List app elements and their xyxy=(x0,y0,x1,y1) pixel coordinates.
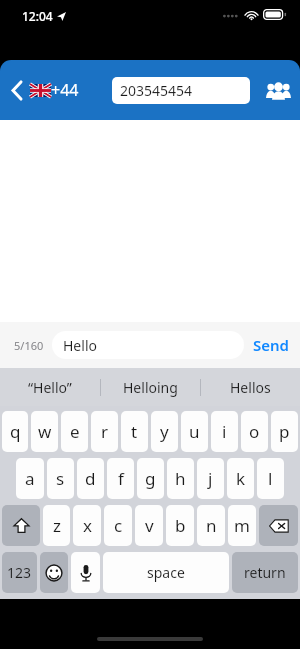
staticText: “Hello” xyxy=(28,378,72,397)
button[interactable]: Emoji xyxy=(40,552,68,593)
button[interactable]: c xyxy=(104,505,132,546)
button[interactable]: n xyxy=(197,505,225,546)
staticText: t xyxy=(131,420,138,443)
button[interactable]: o xyxy=(241,411,268,452)
staticText: v xyxy=(145,514,154,537)
staticText: x xyxy=(83,514,92,537)
button[interactable]: y xyxy=(151,411,178,452)
staticText: g xyxy=(145,467,156,490)
button[interactable]: f xyxy=(107,458,134,499)
button[interactable]: q xyxy=(2,411,28,452)
button[interactable]: return xyxy=(232,552,298,593)
button[interactable]: Helloing xyxy=(101,368,200,406)
button[interactable]: u xyxy=(181,411,208,452)
button[interactable]: space xyxy=(103,552,229,593)
staticText: return xyxy=(244,563,286,582)
staticText: Hellos xyxy=(230,378,271,397)
button[interactable]: “Hello” xyxy=(0,368,100,406)
button[interactable]: Shift xyxy=(2,505,40,546)
button[interactable]: d xyxy=(77,458,104,499)
button[interactable]: Backspace xyxy=(259,505,298,546)
staticText: h xyxy=(175,467,186,490)
button[interactable]: Dictation xyxy=(71,552,100,593)
button[interactable]: z xyxy=(43,505,70,546)
staticText: q xyxy=(10,420,21,443)
button[interactable]: w xyxy=(31,411,58,452)
staticText: 123 xyxy=(7,563,32,582)
button[interactable]: j xyxy=(197,458,224,499)
button[interactable]: a xyxy=(16,458,44,499)
staticText: i xyxy=(222,420,227,443)
staticText: f xyxy=(118,467,124,490)
button[interactable]: m xyxy=(228,505,256,546)
staticText: n xyxy=(206,514,217,537)
button[interactable]: v xyxy=(135,505,163,546)
staticText: l xyxy=(268,467,273,490)
button[interactable]: +44 xyxy=(30,79,79,101)
staticText: 203545454 xyxy=(120,81,193,100)
button[interactable]: p xyxy=(271,411,298,452)
staticText: k xyxy=(236,467,246,490)
staticText: w xyxy=(38,420,52,443)
staticText: o xyxy=(249,420,260,443)
staticText: e xyxy=(70,420,80,443)
staticText: b xyxy=(175,514,186,537)
button[interactable]: k xyxy=(227,458,254,499)
button[interactable]: 123 xyxy=(2,552,37,593)
button[interactable]: e xyxy=(61,411,88,452)
button[interactable]: Hellos xyxy=(201,368,300,406)
staticText: 5/160 xyxy=(14,338,44,353)
staticText: c xyxy=(114,514,123,537)
staticText: Send xyxy=(253,335,289,355)
staticText: a xyxy=(25,467,35,490)
staticText: 12:04 xyxy=(22,8,53,24)
staticText: r xyxy=(101,420,109,443)
button[interactable]: x xyxy=(73,505,101,546)
staticText: u xyxy=(189,420,200,443)
button[interactable]: Contacts xyxy=(261,73,295,107)
button[interactable]: l xyxy=(257,458,284,499)
staticText: Helloing xyxy=(123,378,178,397)
staticText: j xyxy=(208,467,213,490)
button[interactable]: Back xyxy=(2,75,32,105)
staticText: Hello xyxy=(63,336,97,355)
button[interactable]: t xyxy=(121,411,148,452)
button[interactable]: g xyxy=(137,458,164,499)
button[interactable]: h xyxy=(167,458,194,499)
staticText: m xyxy=(234,514,250,537)
button[interactable]: r xyxy=(91,411,118,452)
staticText: p xyxy=(279,420,290,443)
button[interactable]: b xyxy=(166,505,194,546)
button[interactable]: i xyxy=(211,411,238,452)
staticText: d xyxy=(85,467,96,490)
button[interactable]: Hello xyxy=(52,331,244,359)
staticText: y xyxy=(160,420,169,443)
staticText: space xyxy=(147,563,185,582)
button[interactable]: 203545454 xyxy=(112,77,250,104)
button[interactable]: s xyxy=(47,458,74,499)
staticText: z xyxy=(53,514,61,537)
staticText: +44 xyxy=(51,79,79,101)
staticText: s xyxy=(56,467,65,490)
button[interactable]: Send xyxy=(250,330,292,360)
